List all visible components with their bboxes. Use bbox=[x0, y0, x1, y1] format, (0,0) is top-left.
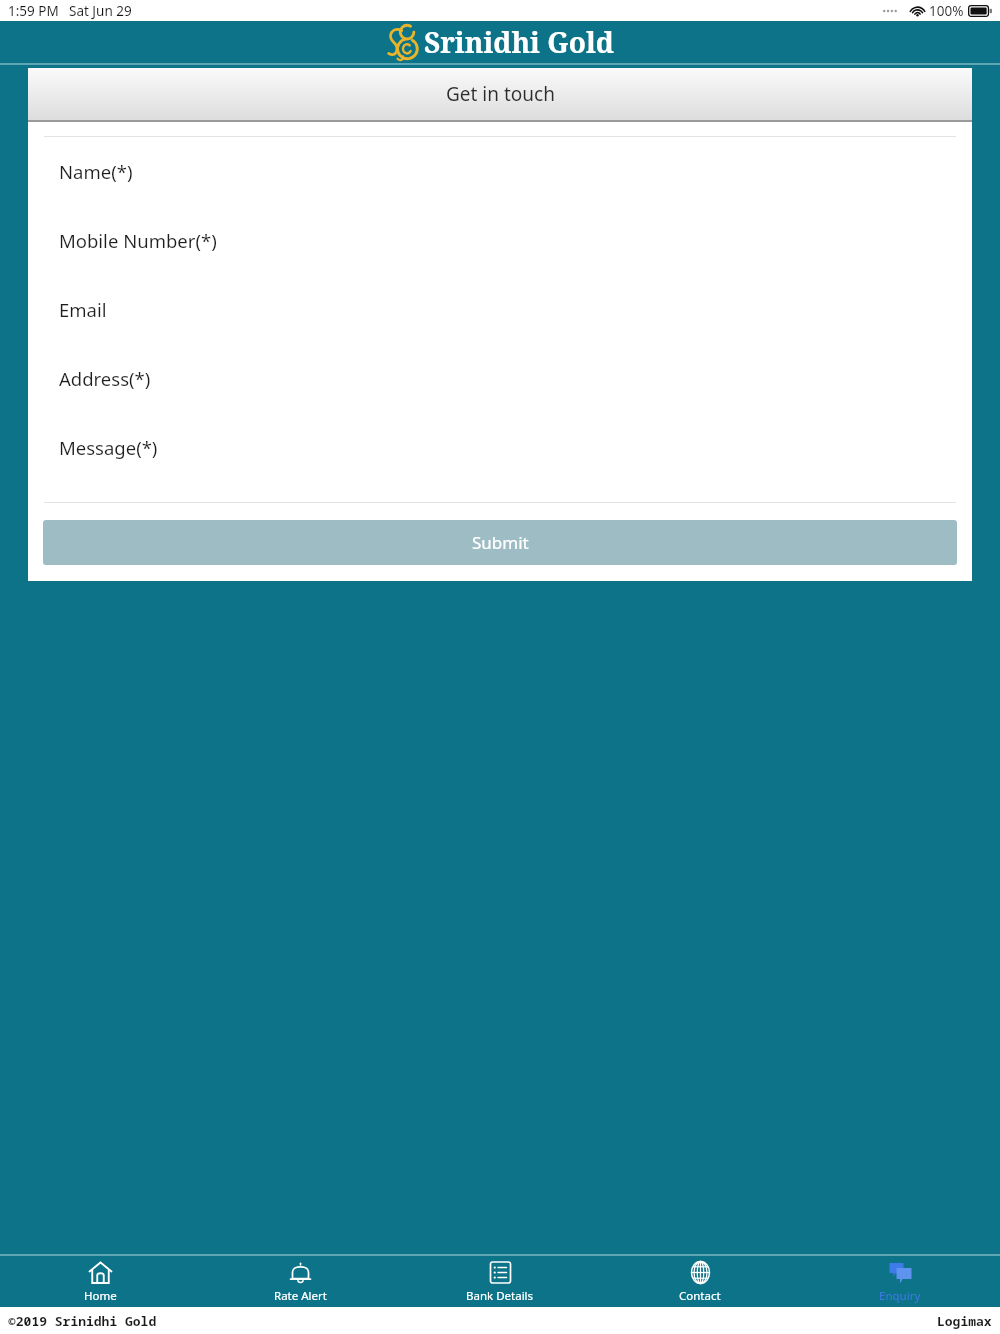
staticText: Mobile Number(*) bbox=[59, 228, 217, 253]
staticText: Rate Alert bbox=[274, 1288, 327, 1304]
button[interactable]: Home bbox=[0, 1260, 200, 1304]
staticText: Srinidhi Gold bbox=[424, 23, 615, 61]
staticText: Email bbox=[59, 297, 107, 322]
button[interactable]: Bank Details bbox=[400, 1260, 600, 1304]
button[interactable]: Mobile Number(*) bbox=[28, 206, 972, 275]
staticText: Get in touch bbox=[446, 81, 555, 107]
button[interactable]: Contact bbox=[600, 1260, 800, 1304]
button[interactable]: Enquiry bbox=[800, 1260, 1000, 1304]
button[interactable]: Message(*) bbox=[28, 413, 972, 482]
staticText: Message(*) bbox=[59, 435, 158, 460]
staticText: Sat Jun 29 bbox=[69, 2, 132, 20]
staticText: 1:59 PM bbox=[8, 2, 59, 20]
staticText: Home bbox=[84, 1288, 117, 1304]
staticText: Submit bbox=[472, 531, 529, 554]
staticText: Contact bbox=[679, 1288, 721, 1304]
staticText: Address(*) bbox=[59, 366, 151, 391]
staticText: Enquiry bbox=[879, 1288, 921, 1304]
button[interactable]: Address(*) bbox=[28, 344, 972, 413]
button[interactable]: Name(*) bbox=[28, 137, 972, 206]
button[interactable]: Email bbox=[28, 275, 972, 344]
staticText: Name(*) bbox=[59, 159, 133, 184]
staticText: ©2019 Srinidhi Gold bbox=[8, 1312, 157, 1330]
button[interactable]: Rate Alert bbox=[200, 1260, 400, 1304]
staticText: Logimax bbox=[937, 1312, 992, 1330]
staticText: Bank Details bbox=[466, 1288, 534, 1304]
button[interactable]: Submit bbox=[43, 520, 957, 565]
staticText: 100% bbox=[929, 2, 964, 20]
